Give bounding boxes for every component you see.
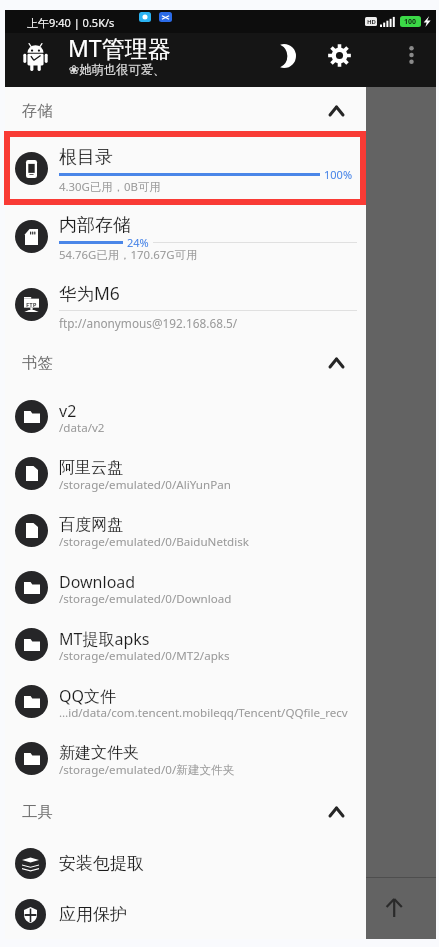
staticText: MT提取apks — [59, 628, 150, 650]
staticText: 新建文件夹 — [59, 743, 139, 763]
button[interactable]: 工具 — [5, 787, 366, 837]
button[interactable]: 内部存储 — [5, 202, 366, 270]
button[interactable]: v2 — [5, 388, 366, 445]
staticText: /storage/emulated/0/AliYunPan — [59, 477, 231, 493]
staticText: 存储 — [22, 101, 53, 121]
staticText: 上午9:40 | 0.5K/s — [27, 15, 115, 30]
staticText: 4.30G已用，0B可用 — [59, 179, 161, 195]
button[interactable]: 书签 — [5, 338, 366, 388]
staticText: 根目录 — [59, 146, 113, 169]
staticText: QQ文件 — [59, 685, 116, 707]
button[interactable]: 根目录 — [5, 134, 366, 202]
staticText: …id/data/com.tencent.mobileqq/Tencent/QQ… — [59, 705, 348, 721]
button[interactable]: Settings — [318, 33, 360, 77]
staticText: 工具 — [22, 802, 53, 822]
button[interactable]: Night mode — [266, 33, 308, 79]
staticText: 阿里云盘 — [59, 458, 123, 478]
staticText: MT管理器 — [68, 32, 171, 63]
button[interactable]: MT提取apks — [5, 616, 366, 673]
staticText: ❀她萌也很可爱、 — [69, 62, 166, 77]
button[interactable]: 阿里云盘 — [5, 445, 366, 502]
button[interactable]: 新建文件夹 — [5, 730, 366, 787]
staticText: ftp://anonymous@192.168.68.5/ — [59, 315, 238, 331]
staticText: /storage/emulated/0/Download — [59, 591, 232, 607]
staticText: 54.76G已用，170.67G可用 — [59, 247, 198, 263]
button[interactable]: 安装包提取 — [5, 837, 366, 890]
staticText: /storage/emulated/0/新建文件夹 — [59, 762, 235, 778]
button[interactable]: QQ文件 — [5, 673, 366, 730]
staticText: 百度网盘 — [59, 515, 123, 535]
staticText: v2 — [59, 400, 77, 422]
staticText: Download — [59, 571, 136, 593]
staticText: /storage/emulated/0/BaiduNetdisk — [59, 534, 249, 550]
button[interactable]: FTP — [5, 270, 366, 338]
staticText: /data/v2 — [59, 420, 105, 436]
staticText: 100% — [324, 167, 353, 182]
staticText: FTP — [26, 301, 37, 309]
button[interactable]: More options — [393, 33, 429, 77]
staticText: 100 — [404, 17, 417, 27]
staticText: /storage/emulated/0/MT2/apks — [59, 648, 230, 664]
staticText: 安装包提取 — [59, 853, 144, 874]
staticText: 内部存储 — [59, 214, 131, 237]
button[interactable]: 存储 — [5, 87, 366, 134]
staticText: HD — [367, 18, 376, 26]
button[interactable]: Up — [385, 898, 405, 918]
staticText: 华为M6 — [59, 281, 120, 305]
button[interactable]: 百度网盘 — [5, 502, 366, 559]
staticText: 24% — [127, 235, 149, 250]
staticText: 书签 — [22, 353, 53, 373]
button[interactable]: 应用保护 — [5, 890, 366, 939]
button[interactable]: Download — [5, 559, 366, 616]
staticText: 应用保护 — [59, 904, 127, 925]
button[interactable]: App icon — [24, 43, 47, 71]
